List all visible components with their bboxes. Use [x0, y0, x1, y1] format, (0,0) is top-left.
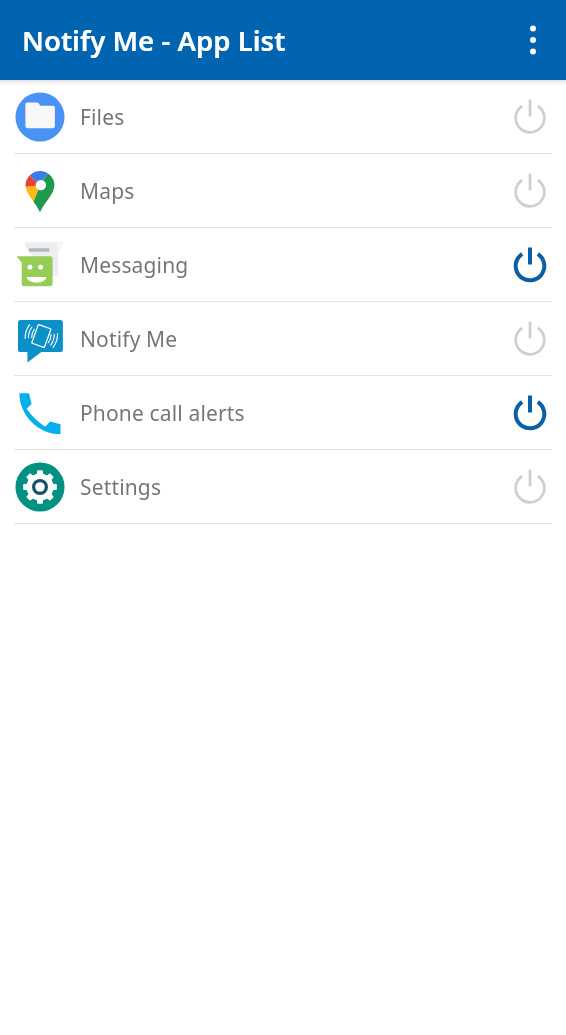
button[interactable]: Notify Me [0, 302, 566, 376]
button[interactable]: Messaging [0, 228, 566, 302]
staticText: Files [80, 103, 125, 132]
button[interactable]: Phone call alerts [0, 376, 566, 450]
button[interactable]: Settings [0, 450, 566, 524]
button[interactable]: Files [0, 80, 566, 154]
button[interactable]: More options [509, 16, 557, 64]
staticText: Messaging [80, 251, 189, 280]
button[interactable]: Maps [0, 154, 566, 228]
staticText: Notify Me - App List [22, 21, 286, 59]
staticText: Maps [80, 177, 135, 206]
staticText: Phone call alerts [80, 399, 245, 428]
button[interactable]: Toggle notifications for Settings [492, 457, 566, 517]
button[interactable]: Toggle notifications for Files [492, 87, 566, 147]
button[interactable]: Toggle notifications for Messaging [492, 235, 566, 295]
button[interactable]: Toggle notifications for Phone call aler… [492, 383, 566, 443]
staticText: Settings [80, 473, 162, 502]
button[interactable]: Toggle notifications for Maps [492, 161, 566, 221]
staticText: Notify Me [80, 325, 178, 354]
button[interactable]: Toggle notifications for Notify Me [492, 309, 566, 369]
